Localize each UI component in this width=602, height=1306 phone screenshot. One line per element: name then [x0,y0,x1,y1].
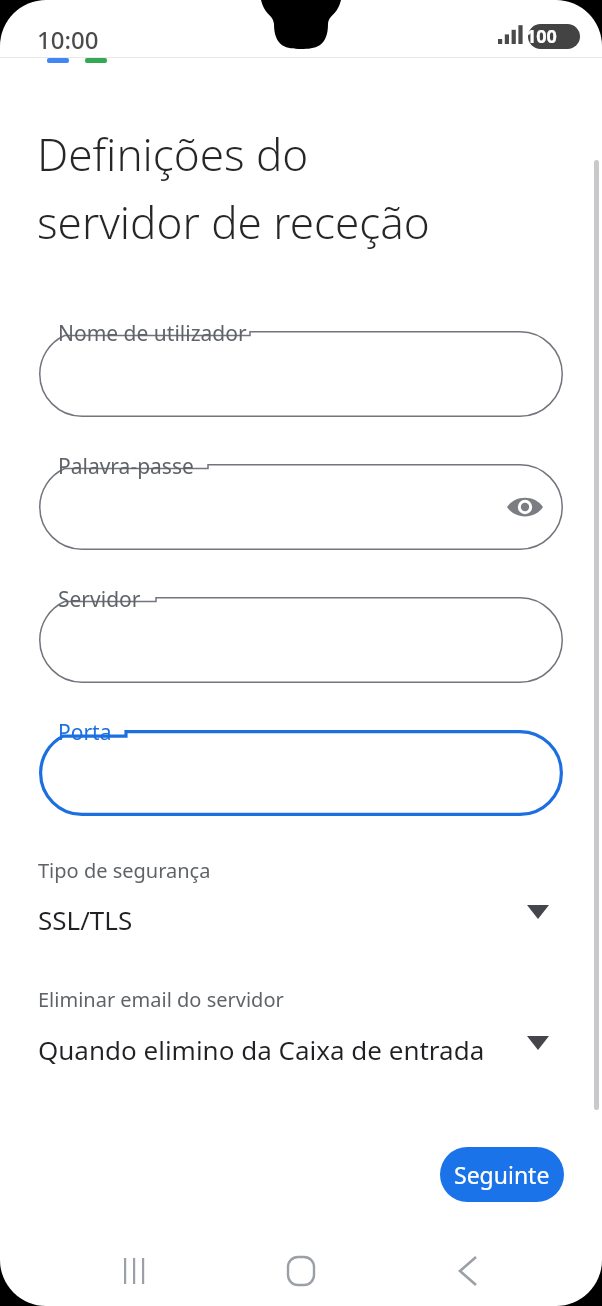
staticText: Eliminar email do servidor [38,986,284,1013]
staticText: Tipo de segurança [38,857,211,884]
staticText: SSL/TLS [38,902,133,937]
staticText: Palavra-passe [58,452,194,481]
button[interactable]: Voltar [434,1244,502,1298]
staticText: 10:00 [37,23,99,56]
staticText: Nome de utilizador [58,319,247,348]
button[interactable] [39,331,563,417]
button[interactable] [0,972,602,1058]
button[interactable] [39,730,563,816]
button[interactable] [0,843,602,929]
staticText: servidor de receção [37,192,430,252]
staticText: Porta [58,718,112,747]
staticText: Definições do [37,124,309,184]
button[interactable]: Seguinte [440,1147,564,1202]
button[interactable]: Mostrar palavra-passe [39,464,563,550]
staticText: Quando elimino da Caixa de entrada [38,1032,485,1067]
button[interactable]: Recentes [100,1244,168,1298]
button[interactable] [39,597,563,683]
staticText: Seguinte [454,1159,550,1190]
staticText: 100 [526,24,557,49]
button[interactable]: Mostrar palavra-passe [507,489,543,525]
button[interactable]: Início [267,1244,335,1298]
staticText: Servidor [58,585,141,614]
